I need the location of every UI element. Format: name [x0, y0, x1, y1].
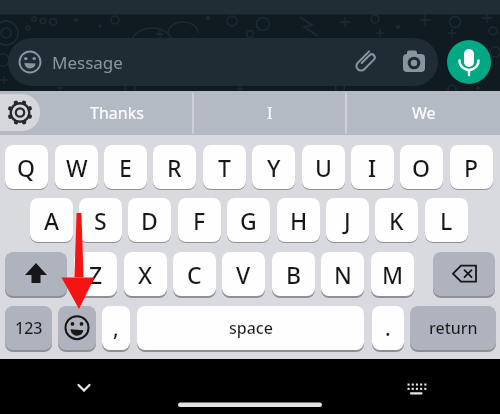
staticText: T [218, 152, 231, 183]
button[interactable]: K [375, 198, 418, 242]
button[interactable]: A [30, 198, 73, 242]
staticText: D [141, 205, 158, 236]
staticText: P [464, 152, 479, 183]
button[interactable]: U [302, 145, 345, 189]
staticText: B [286, 259, 302, 290]
button[interactable]: F [178, 198, 221, 242]
button[interactable] [8, 38, 438, 86]
button[interactable]: P [450, 145, 493, 189]
button[interactable]: I [194, 91, 345, 135]
button[interactable]: Q [5, 145, 48, 189]
staticText: V [236, 259, 251, 290]
staticText: N [334, 259, 352, 290]
staticText: 123 [15, 317, 43, 339]
staticText: R [167, 152, 182, 183]
button[interactable]: C [173, 252, 216, 296]
button[interactable] [5, 252, 67, 296]
button[interactable]: I [351, 145, 394, 189]
staticText: . [385, 314, 391, 343]
staticText: C [187, 259, 202, 290]
button[interactable]: return [410, 306, 496, 350]
staticText: J [344, 205, 351, 236]
staticText: return [429, 317, 478, 339]
button[interactable]: We [347, 91, 500, 135]
staticText: F [193, 205, 206, 236]
staticText: We [412, 102, 436, 124]
staticText: E [119, 152, 132, 183]
staticText: Q [17, 152, 36, 183]
button[interactable]: S [79, 198, 122, 242]
staticText: A [44, 205, 60, 236]
staticText: X [138, 259, 153, 290]
button[interactable]: Thanks [42, 91, 192, 135]
staticText: , [113, 314, 119, 343]
button[interactable] [58, 306, 96, 350]
staticText: W [66, 152, 88, 183]
button[interactable]: . [372, 306, 404, 350]
button[interactable]: M [371, 252, 414, 296]
staticText: S [94, 205, 107, 236]
staticText: I [267, 102, 273, 124]
button[interactable]: W [55, 145, 98, 189]
button[interactable]: L [425, 198, 468, 242]
button[interactable] [447, 40, 491, 84]
staticText: Thanks [90, 102, 144, 124]
button[interactable]: T [203, 145, 246, 189]
button[interactable]: D [128, 198, 171, 242]
button[interactable]: E [104, 145, 147, 189]
button[interactable] [433, 252, 495, 296]
staticText: M [382, 259, 404, 290]
button[interactable]: 123 [5, 306, 52, 350]
button[interactable]: H [277, 198, 320, 242]
staticText: O [412, 152, 431, 183]
staticText: I [368, 152, 377, 183]
button[interactable]: Y [252, 145, 295, 189]
staticText: G [240, 205, 257, 236]
staticText: U [315, 152, 332, 183]
button[interactable]: space [137, 306, 364, 350]
button[interactable] [68, 372, 100, 404]
button[interactable] [400, 372, 432, 404]
button[interactable]: X [124, 252, 167, 296]
button[interactable]: O [400, 145, 443, 189]
button[interactable]: R [153, 145, 196, 189]
button[interactable]: V [222, 252, 265, 296]
staticText: L [440, 205, 453, 236]
button[interactable]: Z [74, 252, 117, 296]
button[interactable]: N [321, 252, 364, 296]
button[interactable]: J [326, 198, 369, 242]
staticText: Message [52, 51, 123, 74]
button[interactable]: B [272, 252, 315, 296]
button[interactable] [0, 94, 40, 131]
staticText: Y [267, 152, 281, 183]
staticText: Z [89, 259, 103, 290]
staticText: K [389, 205, 404, 236]
button[interactable]: G [227, 198, 270, 242]
button[interactable]: , [102, 306, 130, 350]
staticText: H [290, 205, 308, 236]
staticText: space [229, 317, 273, 339]
